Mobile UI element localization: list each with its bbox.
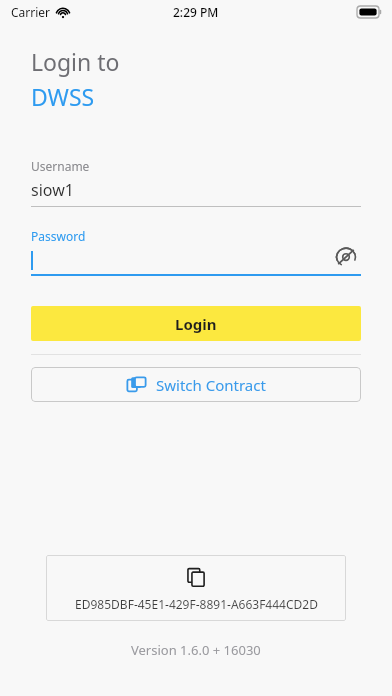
staticText: DWSS: [31, 81, 95, 112]
button[interactable]: Show password: [31, 248, 361, 272]
staticText: siow1: [31, 179, 74, 201]
staticText: Carrier: [11, 4, 51, 20]
staticText: Login to: [31, 46, 120, 77]
button[interactable]: Switch Contract: [31, 367, 361, 402]
button[interactable]: ED985DBF-45E1-429F-8891-A663F444CD2D: [46, 555, 346, 621]
button[interactable]: Login: [31, 306, 361, 341]
button[interactable]: Show password: [331, 245, 361, 269]
staticText: Username: [31, 158, 90, 174]
staticText: Version 1.6.0 + 16030: [131, 641, 261, 659]
staticText: ED985DBF-45E1-429F-8891-A663F444CD2D: [75, 596, 318, 612]
button[interactable]: siow1: [31, 179, 361, 201]
staticText: Switch Contract: [156, 375, 266, 395]
staticText: Login: [175, 314, 217, 334]
staticText: Password: [31, 228, 86, 244]
staticText: 2:29 PM: [173, 4, 219, 20]
